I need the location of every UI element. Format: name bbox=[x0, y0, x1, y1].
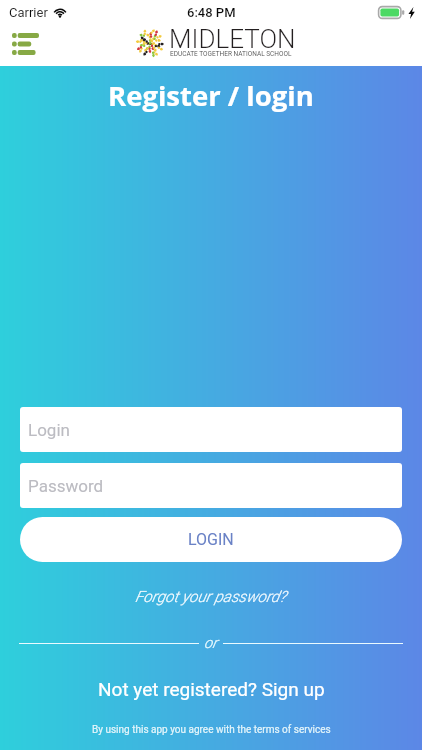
button[interactable]: LOGIN bbox=[20, 517, 402, 562]
staticText: Forgot your password? bbox=[135, 588, 287, 606]
staticText: 6:48 PM bbox=[187, 5, 236, 20]
staticText: Login bbox=[28, 420, 70, 440]
staticText: By using this app you agree with the ter… bbox=[92, 724, 331, 736]
button[interactable]: Forgot your password? bbox=[123, 585, 299, 609]
staticText: Password bbox=[28, 476, 104, 496]
staticText: Register / login bbox=[108, 77, 314, 114]
button[interactable]: Not yet registered? Sign up bbox=[86, 675, 337, 703]
staticText: EDUCATE TOGETHER NATIONAL SCHOOL bbox=[170, 50, 292, 58]
staticText: Carrier bbox=[9, 5, 48, 20]
staticText: or bbox=[204, 634, 218, 652]
staticText: Not yet registered? Sign up bbox=[98, 678, 325, 700]
button[interactable]: Password bbox=[20, 463, 402, 508]
button[interactable]: Open navigation menu bbox=[4, 26, 47, 62]
staticText: MIDLETON bbox=[169, 24, 296, 54]
button[interactable]: Login bbox=[20, 407, 402, 452]
staticText: LOGIN bbox=[188, 530, 234, 549]
